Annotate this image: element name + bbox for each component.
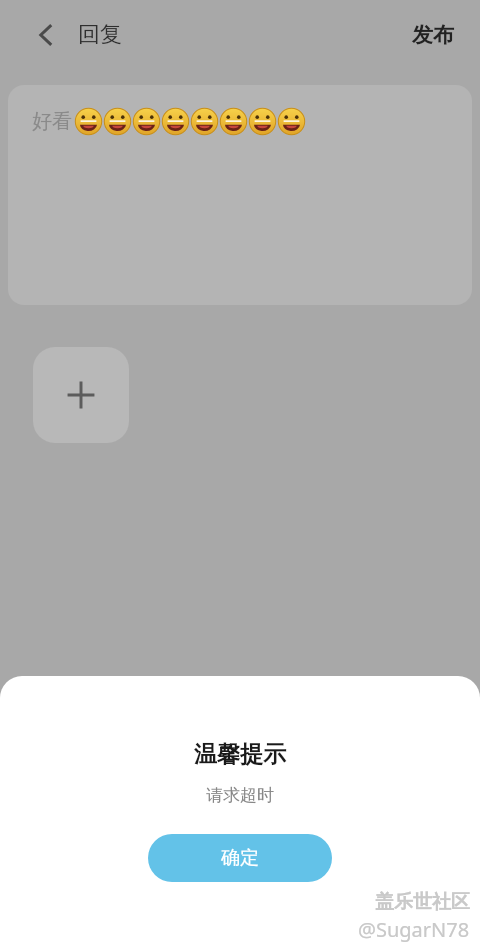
staticText: 发布 — [412, 22, 454, 48]
staticText: 请求超时 — [206, 785, 274, 806]
staticText: 确定 — [221, 846, 259, 870]
staticText: @SugarN78 — [358, 916, 470, 943]
staticText: 盖乐世社区 — [375, 890, 470, 914]
button[interactable]: Add image — [33, 347, 129, 443]
button[interactable]: 好看 — [8, 85, 472, 305]
staticText: 温馨提示 — [194, 740, 286, 769]
button[interactable]: 确定 — [148, 834, 332, 882]
staticText: 回复 — [78, 21, 122, 49]
staticText: 好看 — [32, 109, 72, 134]
button[interactable]: 发布 — [406, 14, 460, 56]
button[interactable]: Back — [22, 11, 70, 59]
button[interactable]: 回复 — [78, 0, 122, 70]
